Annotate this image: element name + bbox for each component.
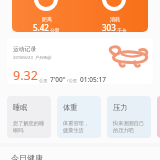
staticText: 公里 (38, 78, 50, 84)
button[interactable]: 体重 (57, 96, 101, 138)
button[interactable]: 压力 (107, 96, 151, 138)
staticText: /公里 (66, 78, 80, 84)
staticText: 快来测测自己 的压力吧 (113, 120, 145, 134)
staticText: 运动记录 (13, 45, 37, 52)
staticText: 体重管理， 健康生活 (63, 120, 89, 134)
staticText: 7'00" (50, 75, 66, 84)
button[interactable]: 心率 (157, 96, 160, 138)
staticText: 千卡 (116, 27, 127, 32)
staticText: 睡眠 (13, 103, 28, 112)
staticText: 压力 (113, 103, 128, 112)
staticText: 体重 (63, 103, 78, 112)
button[interactable]: 睡眠 (7, 96, 51, 138)
staticText: 303 (102, 22, 116, 32)
staticText: 01:05:17 (80, 75, 106, 84)
staticText: 距离 (42, 16, 52, 22)
staticText: 公里 (49, 27, 60, 32)
staticText: 5.42 (33, 22, 49, 32)
staticText: 今日健康 (11, 153, 43, 160)
staticText: 2018/6/23 户外跑步 (13, 55, 52, 61)
staticText: 9.32 (13, 67, 38, 84)
staticText: 您了解您的睡 眠吗 (13, 120, 45, 134)
button[interactable]: 运动记录 (7, 38, 153, 84)
staticText: 消耗 (110, 16, 120, 22)
button[interactable]: 距离 (12, 0, 148, 32)
